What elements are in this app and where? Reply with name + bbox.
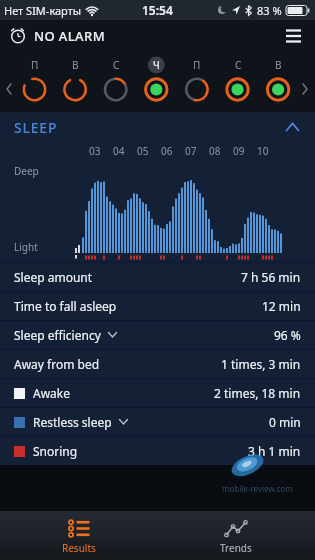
- button[interactable]: Snoring: [0, 437, 315, 465]
- button[interactable]: Awake: [0, 379, 315, 407]
- staticText: Light: [14, 240, 38, 254]
- staticText: 06: [161, 144, 173, 156]
- staticText: mobile-review.com: [222, 483, 293, 494]
- staticText: Deep: [14, 164, 39, 178]
- staticText: 1 times, 3 min: [221, 356, 301, 372]
- staticText: 15:54: [142, 2, 173, 18]
- staticText: В: [72, 58, 79, 72]
- staticText: Ч: [153, 58, 160, 72]
- staticText: С: [235, 58, 242, 72]
- staticText: 12 min: [262, 298, 301, 314]
- button[interactable]: Restless sleep: [0, 408, 315, 436]
- staticText: Restless sleep: [33, 414, 112, 430]
- staticText: В: [275, 58, 282, 72]
- button[interactable]: Sleep efficiency: [0, 321, 315, 349]
- staticText: 04: [113, 144, 125, 156]
- staticText: Results: [62, 541, 96, 555]
- button[interactable]: П: [0, 52, 315, 112]
- staticText: 07: [185, 144, 197, 156]
- button[interactable]: Trends: [157, 511, 315, 560]
- staticText: П: [31, 58, 39, 72]
- staticText: 05: [137, 144, 149, 156]
- staticText: Sleep amount: [14, 269, 93, 285]
- staticText: 09: [233, 144, 245, 156]
- staticText: 3 h 1 min: [248, 443, 301, 459]
- staticText: Sleep efficiency: [14, 327, 101, 343]
- staticText: 7 h 56 min: [241, 269, 301, 285]
- staticText: Trends: [220, 541, 252, 555]
- staticText: 08: [209, 144, 221, 156]
- button[interactable]: NO ALARM: [0, 27, 105, 45]
- staticText: Away from bed: [14, 356, 100, 372]
- button[interactable]: Results: [0, 511, 157, 560]
- staticText: Time to fall asleep: [14, 298, 117, 314]
- button[interactable]: [286, 29, 301, 43]
- staticText: Awake: [33, 385, 71, 401]
- staticText: 10: [257, 144, 269, 156]
- button[interactable]: Sleep amount: [0, 263, 315, 291]
- staticText: SLEEP: [14, 118, 58, 137]
- staticText: 83 %: [257, 3, 282, 18]
- button[interactable]: SLEEP: [0, 112, 315, 142]
- staticText: П: [193, 58, 201, 72]
- staticText: Snoring: [33, 443, 78, 459]
- staticText: 03: [89, 144, 101, 156]
- staticText: 0 min: [269, 414, 301, 430]
- staticText: Нет SIM-карты: [4, 3, 82, 18]
- staticText: С: [113, 58, 120, 72]
- button[interactable]: Away from bed: [0, 350, 315, 378]
- button[interactable]: Time to fall asleep: [0, 292, 315, 320]
- staticText: 2 times, 18 min: [214, 385, 301, 401]
- staticText: NO ALARM: [34, 27, 105, 45]
- staticText: 96 %: [274, 327, 301, 343]
